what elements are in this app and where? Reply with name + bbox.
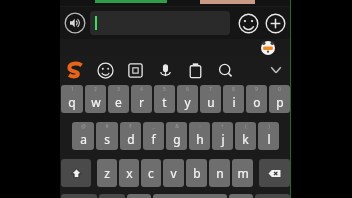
button[interactable]: 6 bbox=[177, 85, 198, 113]
staticText: l bbox=[267, 131, 271, 147]
staticText: x bbox=[126, 165, 133, 181]
button[interactable]: Enter bbox=[255, 194, 290, 198]
staticText: 8 bbox=[232, 86, 235, 93]
button[interactable]: z bbox=[97, 159, 117, 187]
staticText: w bbox=[91, 94, 101, 110]
staticText: 3 bbox=[117, 86, 120, 93]
button[interactable]: c bbox=[141, 159, 161, 187]
button[interactable]: 5 bbox=[154, 85, 175, 113]
staticText: 4 bbox=[140, 86, 143, 93]
button[interactable]: Stickers bbox=[120, 57, 150, 83]
staticText: y bbox=[184, 94, 191, 110]
button[interactable]: _ bbox=[143, 122, 164, 150]
button[interactable]: Search bbox=[210, 57, 240, 83]
staticText: 7 bbox=[209, 86, 212, 93]
button[interactable]: ( bbox=[235, 122, 256, 150]
staticText: t bbox=[162, 94, 167, 110]
button[interactable]: 9 bbox=[246, 85, 267, 113]
button[interactable]: Emoji keyboard bbox=[90, 57, 120, 83]
staticText: z bbox=[104, 165, 110, 181]
button[interactable]: Collapse toolbar bbox=[261, 57, 291, 83]
staticText: ) bbox=[268, 123, 270, 130]
button[interactable]: Symbols bbox=[61, 194, 97, 198]
staticText: q bbox=[68, 94, 76, 110]
button[interactable]: Clipboard bbox=[180, 57, 210, 83]
button[interactable]: 3 bbox=[108, 85, 129, 113]
button[interactable]: + bbox=[212, 122, 233, 150]
button[interactable]: Emoji bbox=[99, 194, 125, 198]
staticText: 1 bbox=[71, 86, 74, 93]
staticText: # bbox=[105, 123, 109, 130]
staticText: _ bbox=[152, 123, 155, 130]
button[interactable]: 8 bbox=[223, 85, 244, 113]
staticText: h bbox=[196, 131, 204, 147]
staticText: i bbox=[232, 94, 236, 110]
button[interactable]: SwiftKey menu bbox=[60, 57, 90, 83]
button[interactable]: 4 bbox=[131, 85, 152, 113]
button[interactable]: Voice input bbox=[150, 57, 180, 83]
button[interactable]: Comma bbox=[127, 194, 151, 198]
staticText: c bbox=[148, 165, 154, 181]
staticText: j bbox=[221, 131, 225, 147]
button[interactable]: Backspace bbox=[259, 159, 290, 187]
button[interactable]: & bbox=[166, 122, 187, 150]
staticText: & bbox=[175, 123, 179, 130]
button[interactable]: n bbox=[209, 159, 230, 187]
staticText: 5 bbox=[163, 86, 166, 93]
button[interactable]: Sticker avatar bbox=[260, 40, 275, 55]
button[interactable]: - bbox=[189, 122, 210, 150]
button[interactable]: # bbox=[96, 122, 118, 150]
button[interactable]: v bbox=[163, 159, 184, 187]
button[interactable]: x bbox=[119, 159, 139, 187]
staticText: f bbox=[151, 131, 156, 147]
staticText: 0 bbox=[278, 86, 281, 93]
button[interactable]: 7 bbox=[200, 85, 221, 113]
staticText: ₹ bbox=[129, 123, 132, 130]
staticText: g bbox=[173, 131, 181, 147]
staticText: o bbox=[253, 94, 261, 110]
staticText: s bbox=[104, 131, 110, 147]
staticText: n bbox=[216, 165, 224, 181]
staticText: 6 bbox=[186, 86, 189, 93]
staticText: d bbox=[127, 131, 135, 147]
staticText: @ bbox=[81, 123, 86, 130]
button[interactable]: ₹ bbox=[120, 122, 141, 150]
button[interactable] bbox=[90, 11, 230, 35]
staticText: u bbox=[207, 94, 215, 110]
button[interactable]: 0 bbox=[269, 85, 290, 113]
staticText: a bbox=[80, 131, 87, 147]
button[interactable]: Add attachment bbox=[263, 11, 287, 35]
button[interactable]: Period bbox=[229, 194, 253, 198]
button[interactable]: m bbox=[232, 159, 253, 187]
staticText: - bbox=[199, 123, 201, 130]
button[interactable]: @ bbox=[72, 122, 94, 150]
staticText: b bbox=[193, 165, 201, 181]
staticText: + bbox=[221, 123, 224, 130]
staticText: m bbox=[237, 165, 249, 181]
staticText: 9 bbox=[255, 86, 258, 93]
button[interactable]: Shift bbox=[61, 159, 91, 187]
button[interactable]: Space bbox=[153, 194, 227, 198]
button[interactable]: Voice message bbox=[63, 11, 87, 35]
button[interactable]: b bbox=[186, 159, 207, 187]
staticText: k bbox=[242, 131, 249, 147]
button[interactable]: Emoji bbox=[236, 11, 260, 35]
staticText: r bbox=[139, 94, 144, 110]
staticText: 2 bbox=[94, 86, 97, 93]
staticText: v bbox=[170, 165, 177, 181]
staticText: p bbox=[276, 94, 284, 110]
staticText: e bbox=[115, 94, 122, 110]
button[interactable]: ) bbox=[258, 122, 279, 150]
button[interactable]: 2 bbox=[85, 85, 106, 113]
staticText: ( bbox=[245, 123, 247, 130]
button[interactable]: 1 bbox=[61, 85, 83, 113]
